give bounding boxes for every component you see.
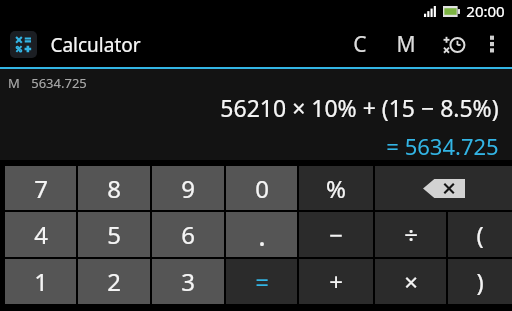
button[interactable]: ) bbox=[448, 259, 512, 304]
staticText: 6 bbox=[181, 218, 195, 251]
staticText: − bbox=[329, 218, 343, 251]
button[interactable]: 6 bbox=[152, 212, 224, 257]
button[interactable]: 8 bbox=[78, 166, 150, 210]
button[interactable]: History bbox=[429, 22, 477, 67]
staticText: . bbox=[258, 216, 266, 254]
button[interactable]: C bbox=[337, 22, 383, 67]
staticText: C bbox=[353, 30, 367, 59]
button[interactable]: 1 bbox=[5, 259, 76, 304]
button[interactable]: ( bbox=[448, 212, 512, 257]
staticText: M bbox=[396, 30, 416, 59]
staticText: ( bbox=[476, 218, 484, 251]
button[interactable]: ÷ bbox=[375, 212, 446, 257]
staticText: 7 bbox=[34, 172, 48, 205]
button[interactable]: M bbox=[383, 22, 429, 67]
staticText: M bbox=[8, 74, 20, 92]
button[interactable]: Calculator bbox=[10, 31, 37, 58]
staticText: × bbox=[404, 265, 418, 298]
staticText: = 5634.725 bbox=[386, 131, 499, 160]
button[interactable]: = bbox=[226, 259, 297, 304]
staticText: ) bbox=[476, 265, 484, 298]
staticText: 5 bbox=[107, 218, 121, 251]
button[interactable]: % bbox=[299, 166, 373, 210]
staticText: Calculator bbox=[50, 32, 141, 58]
staticText: 3 bbox=[181, 265, 195, 298]
button[interactable]: 4 bbox=[5, 212, 76, 257]
staticText: + bbox=[329, 265, 343, 298]
staticText: 4 bbox=[34, 218, 48, 251]
staticText: 8 bbox=[107, 172, 121, 205]
staticText: 2 bbox=[107, 265, 121, 298]
button[interactable]: 3 bbox=[152, 259, 224, 304]
staticText: 0 bbox=[255, 172, 269, 205]
button[interactable]: × bbox=[375, 259, 446, 304]
button[interactable]: 7 bbox=[5, 166, 76, 210]
button[interactable]: More options bbox=[477, 22, 507, 67]
staticText: = bbox=[255, 265, 269, 298]
staticText: 20:00 bbox=[466, 1, 505, 21]
button[interactable]: 0 bbox=[226, 166, 297, 210]
staticText: 9 bbox=[181, 172, 195, 205]
button[interactable]: 2 bbox=[78, 259, 150, 304]
button[interactable]: − bbox=[299, 212, 373, 257]
button[interactable]: 5 bbox=[78, 212, 150, 257]
staticText: ÷ bbox=[404, 218, 418, 251]
staticText: 1 bbox=[34, 265, 48, 298]
staticText: 56210 × 10% + (15 − 8.5%) bbox=[220, 92, 499, 123]
button[interactable]: + bbox=[299, 259, 373, 304]
staticText: 5634.725 bbox=[31, 74, 87, 92]
button[interactable]: Delete bbox=[375, 166, 512, 210]
button[interactable]: . bbox=[226, 212, 297, 257]
staticText: % bbox=[326, 172, 346, 205]
button[interactable]: 9 bbox=[152, 166, 224, 210]
